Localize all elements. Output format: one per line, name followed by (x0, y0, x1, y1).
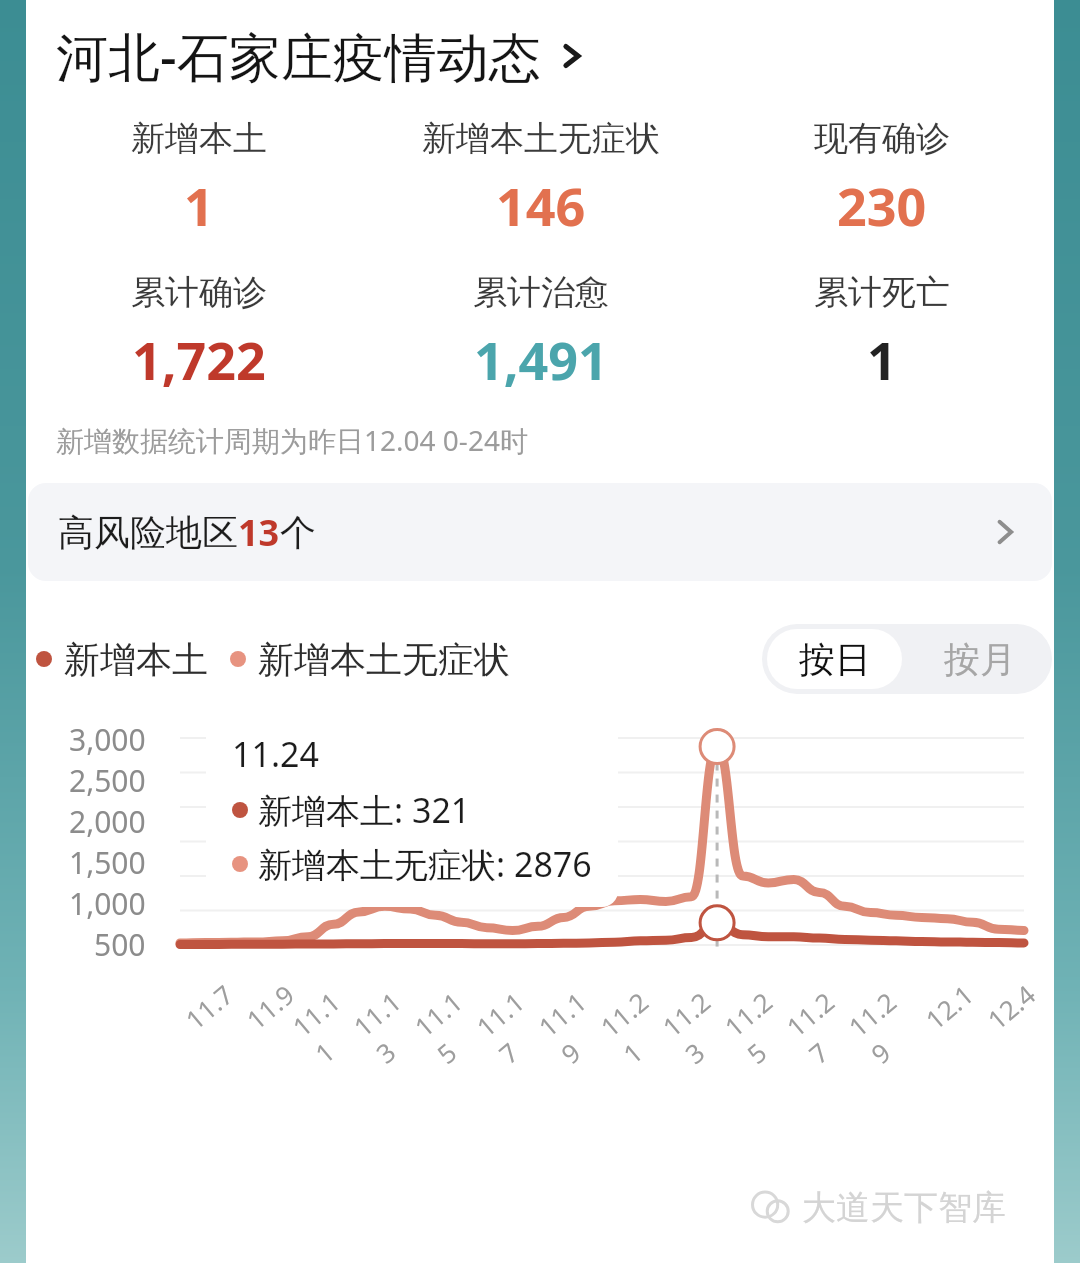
staticText: 11.23 (655, 977, 747, 1071)
staticText: 新增数据统计周期为昨日12.04 0-24时 (56, 421, 528, 459)
staticText: 1,722 (132, 324, 266, 395)
staticText: 3,000 (69, 719, 146, 760)
staticText: 500 (94, 924, 146, 957)
staticText: 11.21 (593, 977, 685, 1071)
button[interactable]: 新增本土 (28, 117, 370, 241)
staticText: 1 (184, 170, 214, 241)
staticText: 146 (496, 170, 586, 241)
staticText: 11.17 (469, 977, 561, 1071)
staticText: 11.29 (841, 977, 933, 1071)
staticText: 11.7 (178, 976, 240, 1037)
staticText: 高风险地区 (58, 510, 238, 555)
staticText: 新增本土 (64, 637, 208, 682)
staticText: 新增本土无症状 (422, 117, 660, 160)
staticText: 大道天下智库 (802, 1186, 1006, 1229)
button[interactable]: 累计确诊 (28, 271, 370, 395)
button[interactable]: 现有确诊 (711, 117, 1052, 241)
staticText: 11.15 (407, 977, 499, 1071)
staticText: 累计确诊 (131, 271, 267, 314)
button[interactable]: 累计治愈 (370, 271, 711, 395)
staticText: 按月 (944, 637, 1016, 682)
other: WeChat (750, 1187, 792, 1229)
staticText: 个 (280, 510, 316, 555)
staticText: 河北-石家庄疫情动态 (56, 20, 541, 91)
staticText: 1 (867, 324, 897, 395)
button[interactable]: 按月 (907, 624, 1052, 694)
button[interactable]: 新增本土无症状 (370, 117, 711, 241)
staticText: 新增本土: 321 (258, 787, 471, 833)
staticText: 1,500 (69, 842, 146, 883)
staticText: 累计治愈 (473, 271, 609, 314)
staticText: 12.4 (980, 976, 1042, 1037)
staticText: 12.1 (918, 976, 980, 1037)
button[interactable]: 河北-石家庄疫情动态 (56, 20, 589, 91)
staticText: 1,000 (69, 883, 146, 924)
staticText: 13 (238, 508, 280, 557)
button[interactable]: 累计死亡 (711, 271, 1052, 395)
staticText: 累计死亡 (814, 271, 950, 314)
staticText: 新增本土 (131, 117, 267, 160)
staticText: 11.27 (779, 977, 871, 1071)
staticText: 现有确诊 (814, 117, 950, 160)
staticText: 11.13 (346, 978, 437, 1070)
staticText: 按日 (799, 637, 871, 682)
staticText: 11.19 (531, 977, 623, 1071)
button[interactable]: 按日 (767, 629, 902, 689)
button[interactable]: 高风险地区 (28, 483, 1052, 581)
staticText: 11.25 (717, 977, 809, 1071)
staticText: 11.9 (239, 976, 301, 1037)
staticText: 2,000 (69, 801, 146, 842)
staticText: 新增本土无症状 (258, 637, 510, 682)
staticText: 1,491 (474, 324, 608, 395)
staticText: 230 (837, 170, 927, 241)
staticText: 新增本土无症状: 2876 (258, 841, 592, 887)
staticText: 11.24 (232, 731, 319, 777)
staticText: 11.11 (285, 978, 376, 1070)
staticText: 2,500 (69, 760, 146, 801)
